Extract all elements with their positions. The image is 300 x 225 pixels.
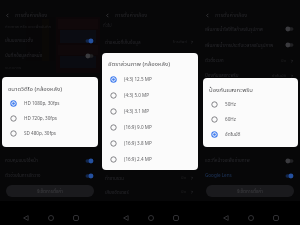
button[interactable] (285, 173, 294, 179)
button[interactable] (85, 173, 94, 179)
staticText: แตะที่หน้าจอเพื่อถ่ายภาพ (205, 157, 285, 164)
staticText: (16:9) 9.0 MP (124, 124, 152, 131)
staticText: 50Hz (225, 101, 236, 108)
button[interactable]: Back (119, 211, 132, 224)
staticText: เพิ่มลายน้ำโลโก้ไลก้าลงในรูปภาพ (205, 26, 285, 33)
staticText: ตัวช่วยในการจัดวาง (5, 172, 85, 179)
staticText: อัตโนมัติ (225, 131, 241, 138)
staticText: ขนาดวิดีโอ (กล้องหลัง) (8, 85, 62, 94)
button[interactable]: HD 1080p, 30fps (10, 96, 98, 111)
button[interactable]: อัตโนมัติ (211, 127, 298, 142)
staticText: SD 480p, 30fps (24, 130, 57, 137)
other: Back (4, 12, 11, 19)
button[interactable] (85, 38, 94, 44)
staticText: (16:9) 2.4 MP (124, 156, 152, 163)
staticText: อัตราส่วนภาพ (กล้องหลัง) (108, 60, 170, 69)
button[interactable]: Home (44, 211, 57, 224)
button[interactable]: Home (244, 211, 257, 224)
staticText: เสียงชัตเตอร์ (105, 189, 181, 196)
button[interactable]: (4:3) 5.0 MP (110, 87, 198, 103)
staticText: Google Lens (205, 172, 285, 179)
button[interactable]: (4:3) 12.5 MP (110, 71, 198, 87)
button[interactable]: Recent apps (269, 211, 282, 224)
staticText: (4:3) 12.5 MP (124, 76, 152, 83)
button[interactable]: Back (19, 211, 32, 224)
staticText: ทำงานรวม (105, 175, 181, 182)
button[interactable]: Back (103, 11, 112, 20)
button[interactable]: Google Lens (205, 168, 294, 183)
staticText: ป้องกันแสงกะพริบ (205, 72, 272, 79)
staticText: ถ่ายภาพ หรือ แตะเพื่อบันทึก (5, 24, 51, 30)
staticText: เส้นบอกแนวตั้ง (5, 37, 85, 44)
staticText: ขนาดภาพ (5, 65, 22, 71)
button[interactable]: Recent apps (169, 211, 182, 224)
staticText: การตั้งค่ากล้อง (215, 11, 248, 19)
button[interactable] (285, 26, 294, 32)
staticText: การตั้งค่ากล้อง (115, 11, 148, 19)
button[interactable] (285, 42, 294, 48)
button[interactable]: Home (144, 211, 157, 224)
staticText: ตัวตั้งเวลา (205, 57, 281, 64)
button[interactable]: 50Hz (211, 97, 298, 112)
button[interactable] (85, 53, 94, 59)
button[interactable]: ตำแหน่งที่เก็บข้อมูล (105, 35, 195, 49)
staticText: (4:3) 5.0 MP (124, 92, 150, 99)
staticText: รีเซ็ตการตั้งค่า (37, 188, 63, 195)
button[interactable]: (16:9) 2.4 MP (110, 151, 198, 167)
staticText: HD 720p, 30fps (24, 115, 57, 122)
staticText: บันทึกข้อมูลตำแหน่ง (5, 52, 85, 59)
staticText: ปิด (181, 175, 187, 181)
staticText: รีเซ็ตการตั้งค่า (237, 188, 263, 195)
button[interactable]: รีเซ็ตการตั้งค่า (6, 185, 94, 197)
button[interactable]: แตะที่หน้าจอเพื่อถ่ายภาพ (205, 153, 294, 168)
staticText: เพิ่มลายน้ำการประทับเวลาลงในรูปภาพ (205, 42, 285, 49)
button[interactable] (85, 158, 94, 164)
staticText: ปิด (181, 189, 187, 195)
staticText: HD 1080p, 30fps (24, 100, 60, 107)
button[interactable]: (16:9) 9.0 MP (110, 119, 198, 135)
button[interactable]: SD 480p, 30fps (10, 126, 98, 141)
button[interactable]: Back (219, 211, 232, 224)
button[interactable]: HD 720p, 30fps (10, 111, 98, 126)
button[interactable]: Back (3, 11, 12, 20)
staticText: (4:3) 3.1 MP (124, 108, 150, 115)
button[interactable]: ตัวช่วยในการจัดวาง (5, 168, 94, 183)
button[interactable]: ป้องกันแสงกะพริบ (205, 68, 295, 83)
button[interactable]: เพิ่มลายน้ำโลโก้ไลก้าลงในรูปภาพ (205, 21, 294, 37)
button[interactable]: เพิ่มลายน้ำการประทับเวลาลงในรูปภาพ (205, 37, 294, 53)
staticText: ทั่วไป (103, 22, 112, 29)
button[interactable] (285, 158, 294, 164)
button[interactable]: (16:9) 3.8 MP (110, 135, 198, 151)
staticText: ควบคุมแบบใช้หน้า (5, 157, 85, 164)
staticText: (16:9) 3.8 MP (124, 140, 152, 147)
other: Back (104, 12, 111, 19)
other: Back (204, 12, 211, 19)
staticText: ปิด (281, 58, 287, 64)
button[interactable]: เสียงชัตเตอร์ (105, 185, 195, 199)
button[interactable]: รีเซ็ตการตั้งค่า (206, 185, 294, 197)
button[interactable]: บันทึกข้อมูลตำแหน่ง (5, 48, 94, 63)
button[interactable]: Recent apps (69, 211, 82, 224)
button[interactable]: (4:3) 3.1 MP (110, 103, 198, 119)
button[interactable]: 60Hz (211, 112, 298, 127)
button[interactable]: ควบคุมแบบใช้หน้า (5, 153, 94, 168)
staticText: อัตโนมัติ (272, 73, 287, 79)
staticText: การตั้งค่ากล้อง (15, 11, 48, 19)
button[interactable]: เส้นบอกแนวตั้ง (5, 33, 94, 48)
staticText: ตำแหน่งที่เก็บข้อมูล (105, 39, 173, 46)
button[interactable]: Back (203, 11, 212, 20)
staticText: 60Hz (225, 116, 236, 123)
staticText: โทรศัพท์ (173, 39, 187, 45)
staticText: ป้องกันแสงกะพริบ (209, 86, 253, 95)
